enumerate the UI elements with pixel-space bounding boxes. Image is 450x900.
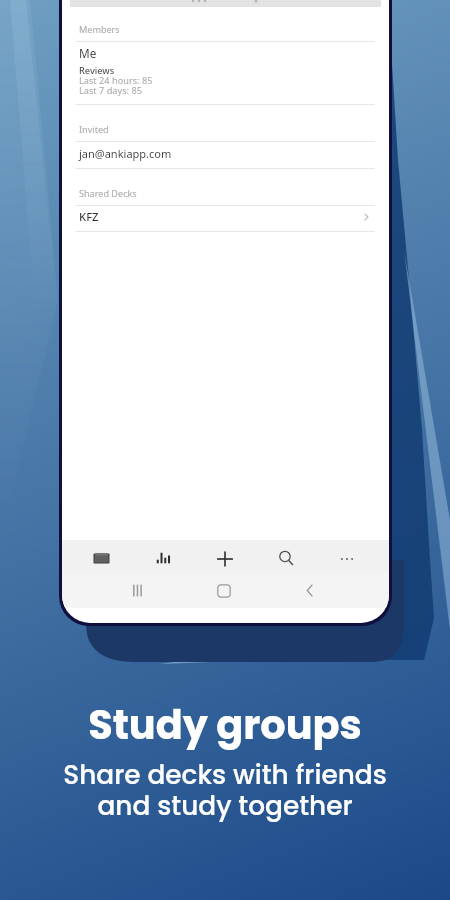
staticText: Share decks with friends and study toget… [0, 756, 450, 824]
staticText: Members [79, 23, 120, 35]
button[interactable]: Back [290, 574, 328, 607]
button[interactable]: Decks [82, 542, 120, 575]
button[interactable]: Add [206, 542, 244, 575]
button[interactable]: More options [328, 542, 366, 575]
button[interactable]: Open deck KFZ [359, 210, 373, 224]
staticText: Reviews [79, 64, 115, 77]
staticText: jan@ankiapp.com [79, 146, 172, 161]
staticText: Study groups [0, 697, 450, 753]
staticText: Me [79, 45, 97, 61]
button[interactable]: Statistics [144, 542, 182, 575]
staticText: Last 7 days: 85 [79, 84, 142, 97]
staticText: Invited [79, 123, 109, 135]
staticText: Last 24 hours: 85 [79, 74, 153, 87]
staticText: KFZ [79, 209, 99, 224]
staticText: Shared Decks [79, 187, 137, 199]
button[interactable]: Home [205, 574, 243, 607]
button[interactable]: Recents [118, 574, 156, 607]
button[interactable]: Search [267, 542, 305, 575]
